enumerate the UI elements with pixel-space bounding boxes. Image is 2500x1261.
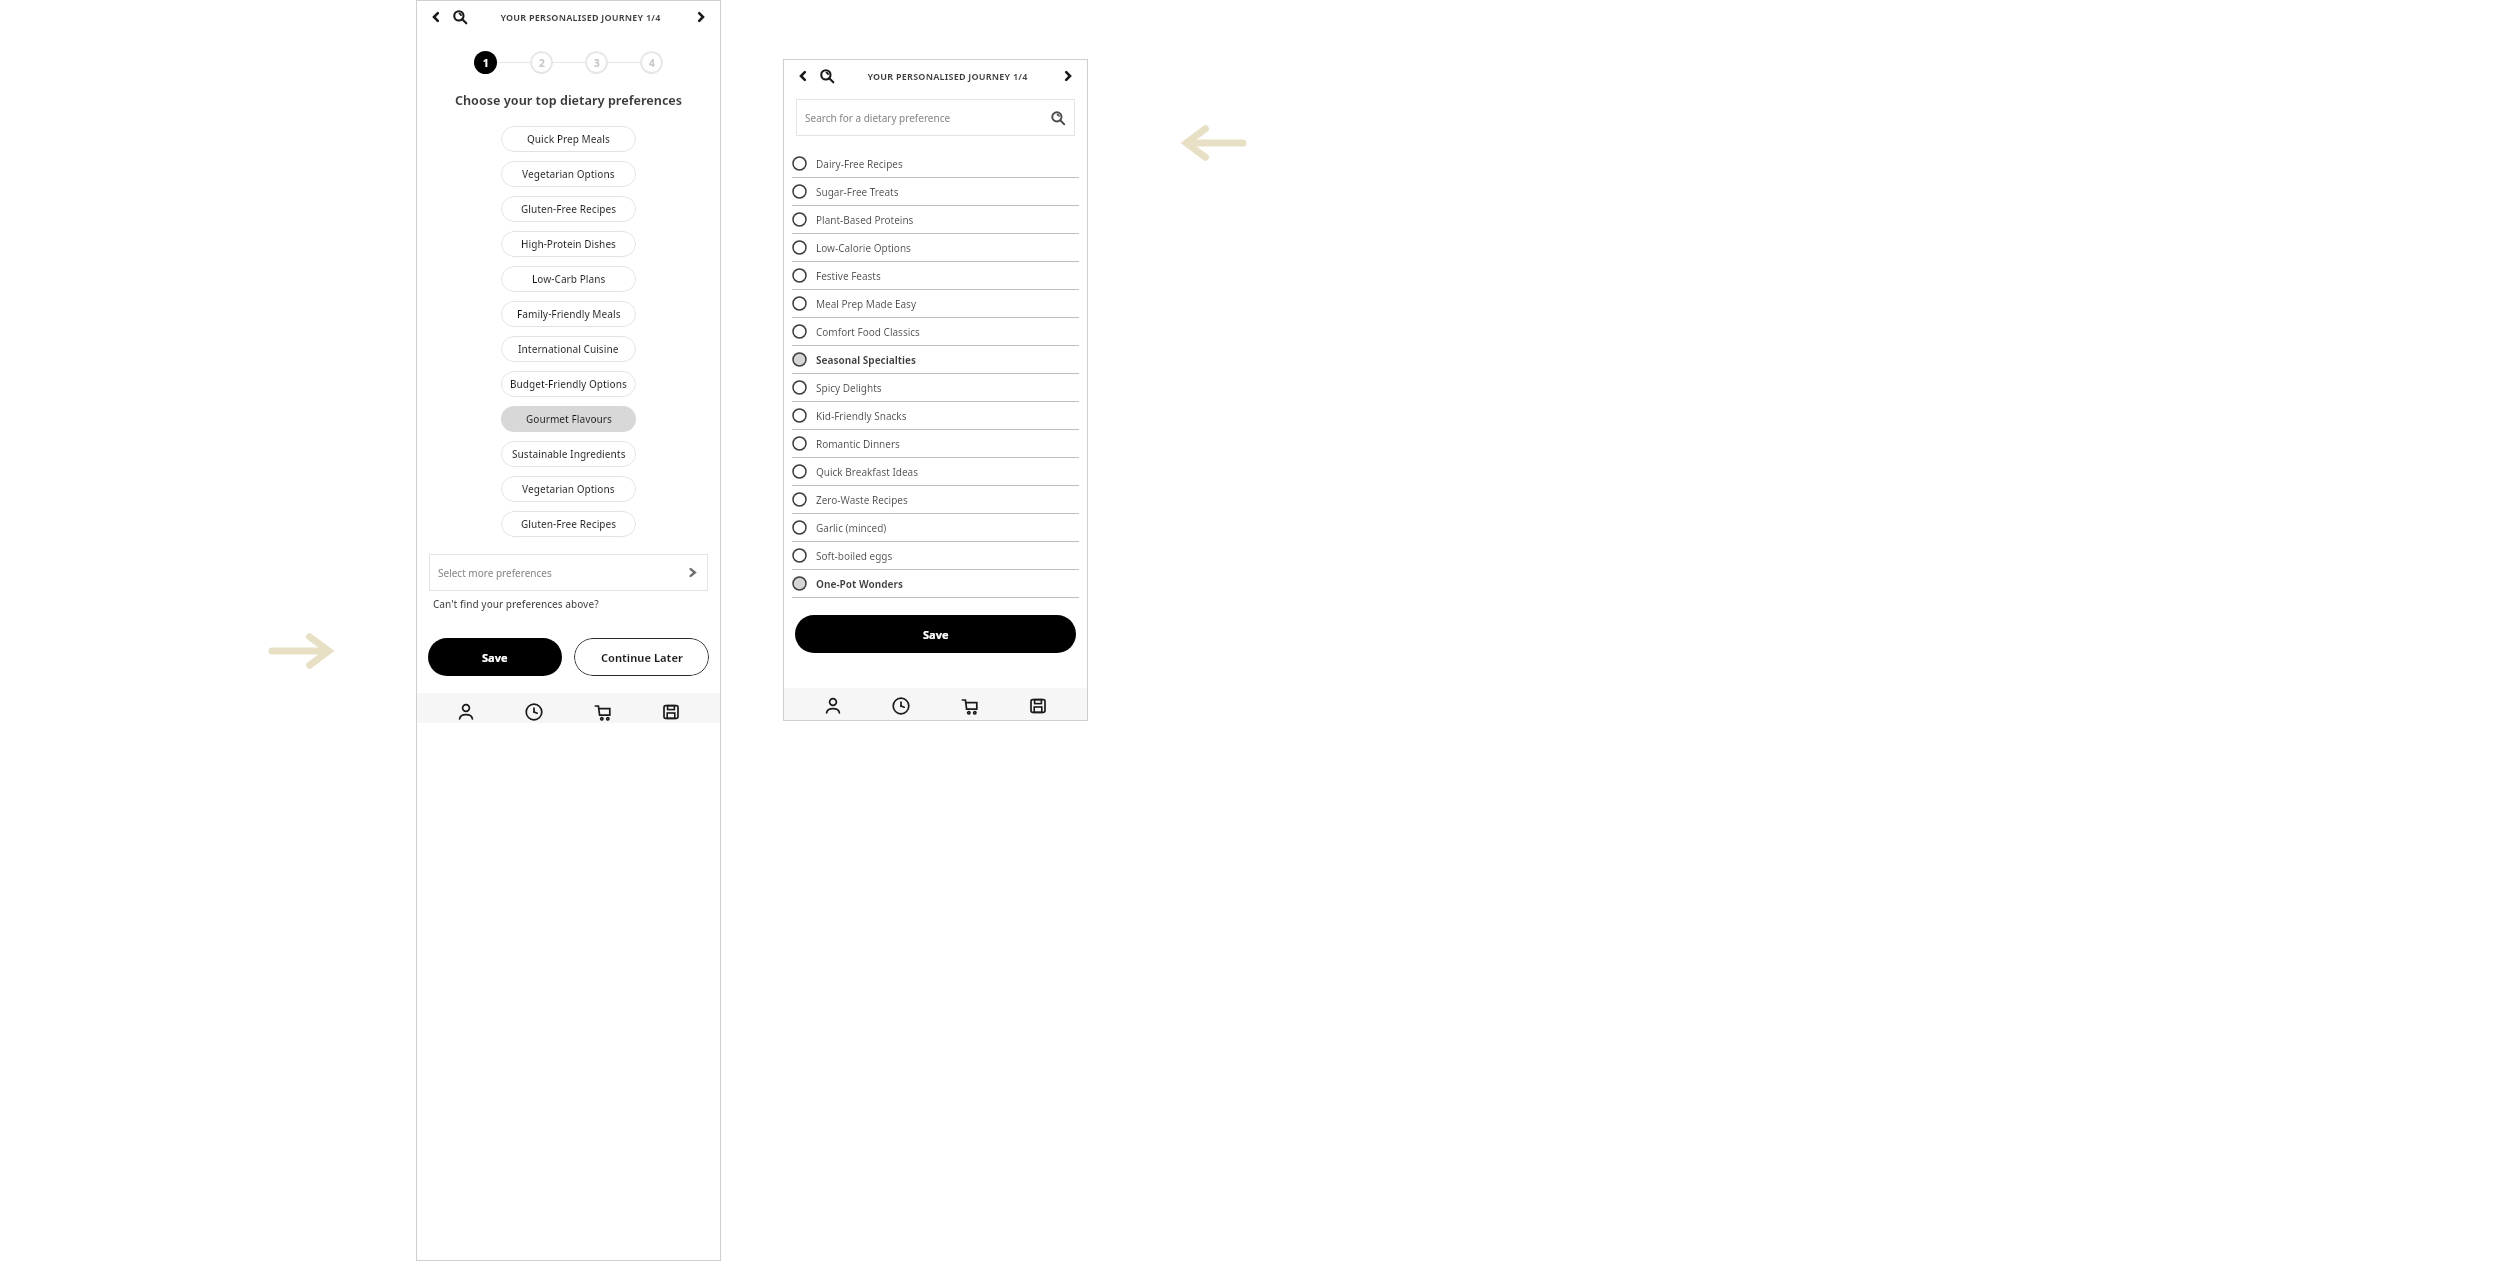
staticText: Save <box>923 627 949 642</box>
staticText: High-Protein Dishes <box>521 237 616 251</box>
staticText: 2 <box>539 56 545 70</box>
staticText: Vegetarian Options <box>522 482 615 496</box>
button[interactable]: Sugar-Free Treats <box>792 178 1079 205</box>
button[interactable]: Low-Calorie Options <box>792 234 1079 261</box>
staticText: Search for a dietary preference <box>805 111 1051 125</box>
staticText: Can't find your preferences above? <box>433 597 599 611</box>
button[interactable]: Spicy Delights <box>792 374 1079 401</box>
button[interactable]: Vegetarian Options <box>501 476 636 502</box>
staticText: Festive Feasts <box>816 269 881 283</box>
staticText: Continue Later <box>601 650 683 665</box>
button[interactable]: One-Pot Wonders <box>792 570 1079 597</box>
staticText: Soft-boiled eggs <box>816 549 893 563</box>
staticText: Romantic Dinners <box>816 437 900 451</box>
button[interactable]: Search <box>451 8 469 26</box>
button[interactable]: High-Protein Dishes <box>501 231 636 257</box>
staticText: 4 <box>649 56 655 70</box>
staticText: Sugar-Free Treats <box>816 185 899 199</box>
button[interactable]: Back <box>427 8 445 26</box>
button[interactable]: Comfort Food Classics <box>792 318 1079 345</box>
staticText: Meal Prep Made Easy <box>816 297 916 311</box>
button[interactable]: 2 <box>530 51 553 74</box>
staticText: Plant-Based Proteins <box>816 213 914 227</box>
staticText: Kid-Friendly Snacks <box>816 409 907 423</box>
staticText: Gluten-Free Recipes <box>521 202 617 216</box>
button[interactable]: Gourmet Flavours <box>501 406 636 432</box>
button[interactable]: Cart <box>593 702 613 722</box>
button[interactable]: Festive Feasts <box>792 262 1079 289</box>
button[interactable]: Next <box>1059 67 1077 85</box>
button[interactable]: Saved <box>661 702 681 722</box>
staticText: Vegetarian Options <box>522 167 615 181</box>
button[interactable]: Garlic (minced) <box>792 514 1079 541</box>
staticText: YOUR PERSONALISED JOURNEY 1/4 <box>836 70 1059 82</box>
staticText: Family-Friendly Meals <box>517 307 621 321</box>
button[interactable]: Quick Prep Meals <box>501 126 636 152</box>
button[interactable]: Kid-Friendly Snacks <box>792 402 1079 429</box>
button[interactable]: History <box>891 696 911 716</box>
button[interactable]: Zero-Waste Recipes <box>792 486 1079 513</box>
staticText: Garlic (minced) <box>816 521 887 535</box>
staticText: Comfort Food Classics <box>816 325 920 339</box>
button[interactable]: Romantic Dinners <box>792 430 1079 457</box>
button[interactable]: Back <box>794 67 812 85</box>
staticText: Low-Calorie Options <box>816 241 911 255</box>
button[interactable]: Gluten-Free Recipes <box>501 196 636 222</box>
button[interactable]: Quick Breakfast Ideas <box>792 458 1079 485</box>
button[interactable]: 3 <box>585 51 608 74</box>
button[interactable]: International Cuisine <box>501 336 636 362</box>
button[interactable]: Sustainable Ingredients <box>501 441 636 467</box>
button[interactable]: Gluten-Free Recipes <box>501 511 636 537</box>
button[interactable]: Select more preferences <box>429 554 708 591</box>
button[interactable]: Save <box>428 638 562 676</box>
staticText: Budget-Friendly Options <box>510 377 627 391</box>
staticText: Select more preferences <box>438 566 686 580</box>
staticText: YOUR PERSONALISED JOURNEY 1/4 <box>469 11 692 23</box>
button[interactable]: Vegetarian Options <box>501 161 636 187</box>
button[interactable]: Search for a dietary preference <box>796 99 1075 136</box>
staticText: Low-Carb Plans <box>532 272 606 286</box>
staticText: Zero-Waste Recipes <box>816 493 908 507</box>
staticText: International Cuisine <box>518 342 619 356</box>
button[interactable]: Save <box>795 615 1076 653</box>
staticText: Quick Breakfast Ideas <box>816 465 918 479</box>
staticText: 3 <box>594 56 600 70</box>
staticText: 1 <box>483 56 489 70</box>
button[interactable]: Search <box>818 67 836 85</box>
staticText: Gourmet Flavours <box>526 412 612 426</box>
button[interactable]: Soft-boiled eggs <box>792 542 1079 569</box>
staticText: Spicy Delights <box>816 381 882 395</box>
button[interactable]: Family-Friendly Meals <box>501 301 636 327</box>
staticText: Seasonal Specialties <box>816 353 917 367</box>
button[interactable]: 1 <box>474 51 497 74</box>
button[interactable]: Meal Prep Made Easy <box>792 290 1079 317</box>
button[interactable]: Profile <box>456 702 476 722</box>
staticText: One-Pot Wonders <box>816 577 903 591</box>
button[interactable]: Dairy-Free Recipes <box>792 150 1079 177</box>
button[interactable]: Saved <box>1028 696 1048 716</box>
button[interactable]: Budget-Friendly Options <box>501 371 636 397</box>
staticText: Quick Prep Meals <box>527 132 610 146</box>
button[interactable]: Low-Carb Plans <box>501 266 636 292</box>
button[interactable]: Plant-Based Proteins <box>792 206 1079 233</box>
staticText: Dairy-Free Recipes <box>816 157 903 171</box>
button[interactable]: 4 <box>640 51 663 74</box>
button[interactable]: Cart <box>960 696 980 716</box>
staticText: Gluten-Free Recipes <box>521 517 617 531</box>
staticText: Save <box>482 650 508 665</box>
button[interactable]: Continue Later <box>574 638 709 676</box>
staticText: Sustainable Ingredients <box>512 447 626 461</box>
button[interactable]: Profile <box>823 696 843 716</box>
button[interactable]: Seasonal Specialties <box>792 346 1079 373</box>
staticText: Choose your top dietary preferences <box>416 92 721 109</box>
button[interactable]: Next <box>692 8 710 26</box>
button[interactable]: History <box>524 702 544 722</box>
